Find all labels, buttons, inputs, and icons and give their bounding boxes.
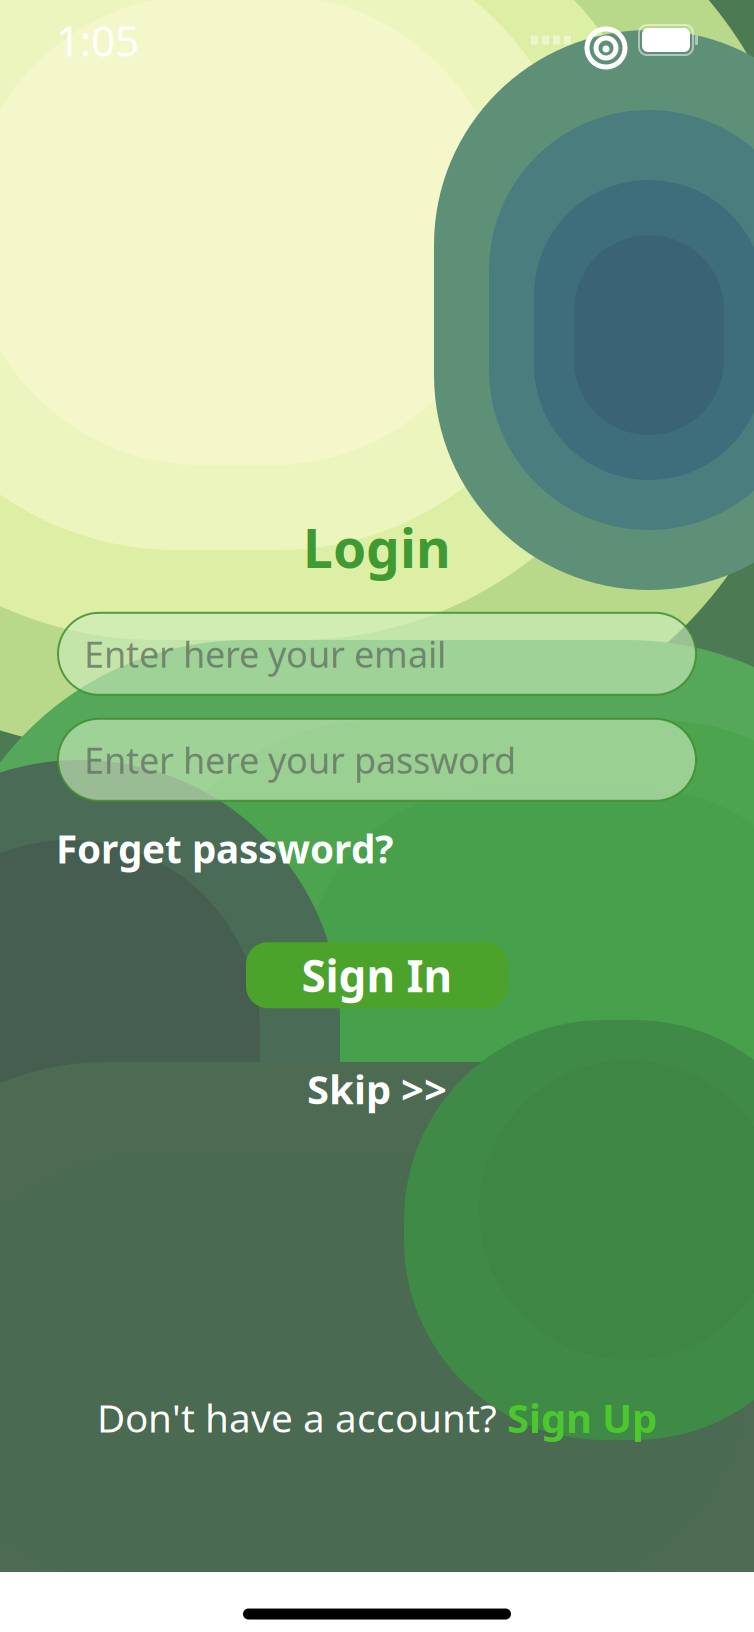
staticText: Login — [303, 512, 451, 583]
staticText: Enter here your password — [84, 736, 516, 784]
button[interactable]: Enter here your email — [58, 613, 696, 695]
button[interactable]: Skip >> — [307, 1062, 447, 1115]
button[interactable]: Don't have a account? — [97, 1391, 657, 1444]
button[interactable]: Enter here your password — [58, 719, 696, 801]
button[interactable]: Sign In — [246, 942, 508, 1008]
staticText: Enter here your email — [84, 630, 446, 678]
staticText: Sign In — [301, 946, 452, 1004]
button[interactable]: Forget password? — [56, 823, 393, 874]
staticText: 1:05 — [56, 12, 139, 68]
staticText: Sign Up — [507, 1391, 657, 1444]
staticText: Skip >> — [307, 1062, 447, 1115]
staticText: Don't have a account? — [97, 1392, 497, 1443]
staticText: Forget password? — [56, 823, 393, 874]
